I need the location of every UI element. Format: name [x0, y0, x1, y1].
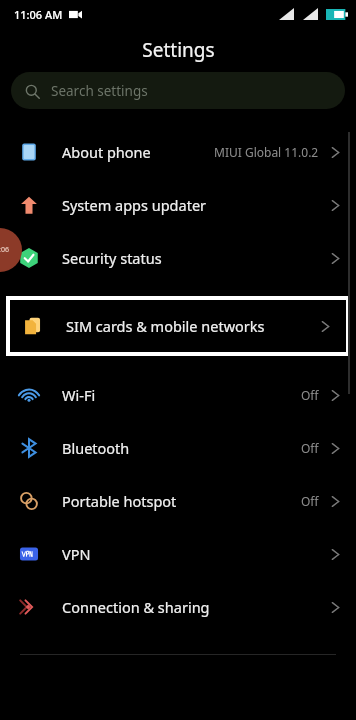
- button[interactable]: Bluetooth: [0, 421, 356, 474]
- button[interactable]: Screen recorder: [0, 228, 22, 272]
- button[interactable]: Wi-Fi: [0, 368, 356, 421]
- button[interactable]: Search settings: [11, 72, 345, 109]
- staticText: Connection & sharing: [62, 597, 331, 617]
- button[interactable]: System apps updater: [0, 178, 356, 231]
- staticText: SIM cards & mobile networks: [66, 316, 321, 336]
- button[interactable]: Portable hotspot: [0, 474, 356, 527]
- staticText: Off: [301, 440, 319, 456]
- staticText: Off: [301, 387, 319, 403]
- staticText: Wi-Fi: [62, 385, 301, 405]
- staticText: Search settings: [51, 82, 148, 100]
- staticText: Off: [301, 493, 319, 509]
- staticText: 00:06: [0, 245, 9, 255]
- button[interactable]: Connection & sharing: [0, 580, 356, 633]
- staticText: System apps updater: [62, 195, 331, 215]
- button[interactable]: VPN: [0, 527, 356, 580]
- button[interactable]: SIM cards & mobile networks: [10, 300, 346, 352]
- button[interactable]: About phone: [0, 125, 356, 178]
- staticText: Security status: [62, 248, 331, 268]
- staticText: About phone: [62, 142, 214, 162]
- staticText: 11:06 AM: [14, 7, 63, 22]
- staticText: MIUI Global 11.0.2: [214, 144, 319, 160]
- staticText: Portable hotspot: [62, 491, 301, 511]
- staticText: Bluetooth: [62, 438, 301, 458]
- button[interactable]: Security status: [0, 231, 356, 284]
- staticText: Settings: [142, 37, 215, 63]
- staticText: VPN: [62, 544, 331, 564]
